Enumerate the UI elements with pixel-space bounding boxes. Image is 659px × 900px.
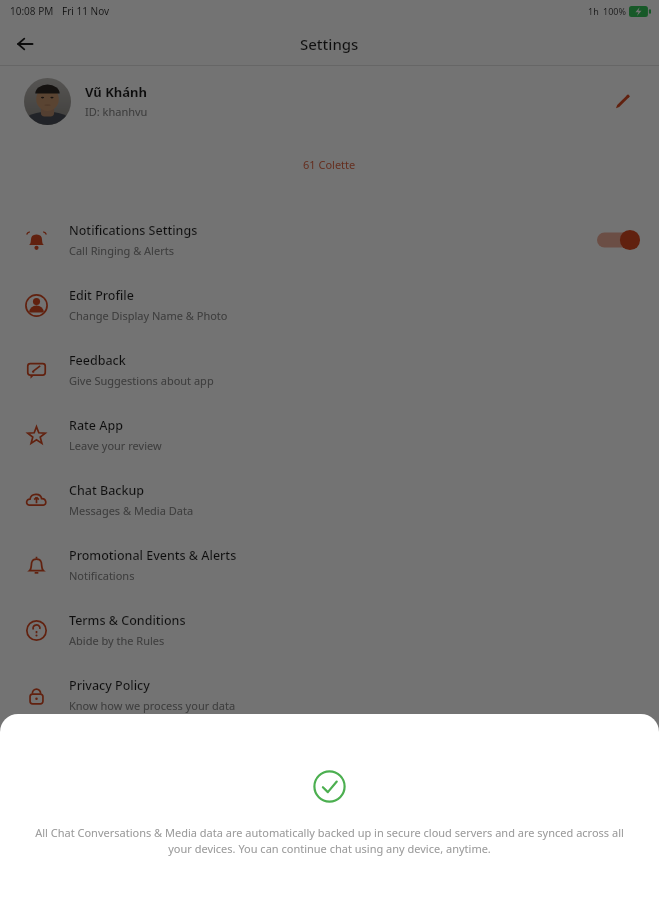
button[interactable]: Chat Backup [0,467,659,532]
button[interactable]: Feedback [0,337,659,402]
staticText: 10:08 PM [10,4,54,18]
staticText: Call Ringing & Alerts [69,243,174,258]
button[interactable]: Terms & Conditions [0,597,659,662]
staticText: Feedback [69,352,126,369]
staticText: ID: khanhvu [85,104,148,119]
staticText: Privacy Policy [69,677,150,694]
staticText: Fri 11 Nov [62,4,110,18]
button[interactable]: Vũ Khánh [0,66,659,136]
staticText: Vũ Khánh [85,83,147,101]
staticText: Leave your review [69,438,162,453]
staticText: Settings [300,34,359,54]
button[interactable]: Notifications Settings [0,207,659,272]
staticText: 100% [603,5,626,17]
button[interactable]: Rate App [0,402,659,467]
staticText: Chat Backup [69,482,145,499]
staticText: Messages & Media Data [69,503,194,518]
staticText: 1h [588,5,599,17]
staticText: Rate App [69,417,123,434]
button[interactable]: Promotional Events & Alerts [0,532,659,597]
button[interactable]: Edit Profile [0,272,659,337]
staticText: Notifications [69,568,135,583]
button[interactable]: Toggle notifications [597,228,641,252]
staticText: Terms & Conditions [69,612,186,629]
staticText: Abide by the Rules [69,633,165,648]
staticText: All Chat Conversations & Media data are … [26,825,633,857]
button[interactable]: Edit profile [605,84,639,118]
staticText: Edit Profile [69,287,134,304]
staticText: Know how we process your data [69,698,236,713]
staticText: Notifications Settings [69,222,198,239]
staticText: 61 Colette [303,157,356,172]
staticText: Promotional Events & Alerts [69,547,237,564]
button[interactable]: Privacy Policy [0,662,659,727]
staticText: Change Display Name & Photo [69,308,228,323]
button[interactable]: Back [8,27,42,61]
staticText: Give Suggestions about app [69,373,214,388]
